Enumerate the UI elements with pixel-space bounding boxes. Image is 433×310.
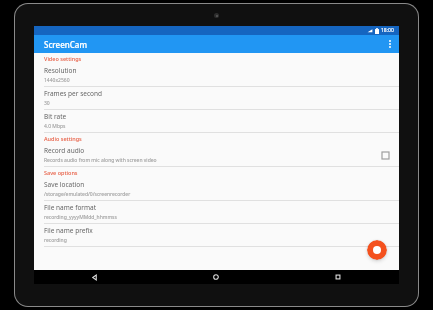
staticText: Record audio	[44, 146, 85, 155]
staticText: Save location	[44, 180, 85, 189]
staticText: recording	[44, 237, 67, 244]
button[interactable]: Bit rate	[34, 110, 399, 132]
button[interactable]: Save location	[34, 178, 399, 200]
button[interactable]: Record audio	[34, 144, 399, 166]
staticText: Records audio from mic along with screen…	[44, 157, 157, 164]
staticText: Bit rate	[44, 112, 67, 121]
button[interactable]: Back	[34, 270, 155, 284]
button[interactable]: Resolution	[34, 64, 399, 86]
staticText: Frames per second	[44, 89, 103, 98]
staticText: 30	[44, 100, 50, 107]
staticText: Audio settings	[44, 135, 82, 142]
staticText: Video settings	[44, 55, 82, 62]
staticText: /storage/emulated/0/screenrecorder	[44, 191, 131, 198]
button[interactable]: File name prefix	[34, 224, 399, 246]
staticText: Resolution	[44, 66, 77, 75]
button[interactable]: Home	[155, 270, 277, 284]
staticText: File name format	[44, 203, 97, 212]
staticText: 1440x2560	[44, 77, 70, 84]
button[interactable]: Frames per second	[34, 87, 399, 109]
button[interactable]: Start recording	[367, 240, 387, 260]
button[interactable]: Recent apps	[277, 270, 399, 284]
staticText: ScreenCam	[44, 39, 87, 50]
staticText: Save options	[44, 169, 78, 176]
staticText: recording_yyyyMMdd_hhmmss	[44, 214, 117, 221]
staticText: File name prefix	[44, 226, 93, 235]
staticText: 4.0 Mbps	[44, 123, 66, 130]
staticText: 18:00	[381, 27, 394, 34]
button[interactable]: More options	[381, 35, 399, 53]
button[interactable]: File name format	[34, 201, 399, 223]
